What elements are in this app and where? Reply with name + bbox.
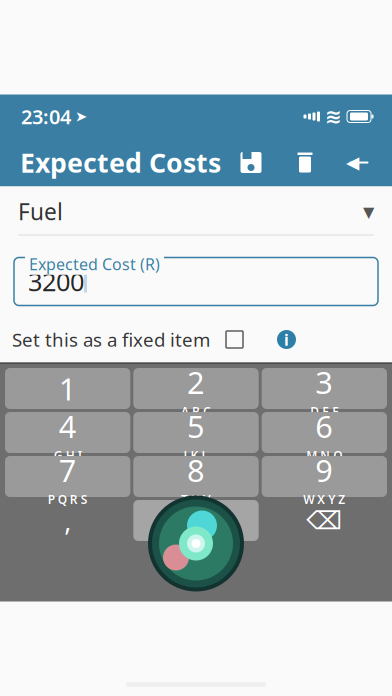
staticText: i [284, 329, 289, 350]
staticText: 1 [59, 368, 77, 409]
staticText: 5 [187, 406, 205, 446]
staticText: Expected Cost (R) [29, 253, 160, 275]
button[interactable]: 1 [5, 368, 130, 409]
staticText: T U V [181, 491, 211, 507]
staticText: ⌫ [306, 506, 342, 535]
button[interactable]: Comma [5, 500, 130, 541]
button[interactable]: Fuel [0, 196, 392, 235]
button[interactable]: Delete [292, 149, 318, 175]
staticText: 4 [59, 406, 77, 446]
staticText: 3200 [28, 265, 84, 298]
staticText: 9 [315, 450, 333, 490]
staticText: 3 [315, 362, 333, 402]
button[interactable]: Save [238, 149, 264, 175]
staticText: 23:04 [21, 103, 71, 130]
staticText: M N O [306, 447, 342, 463]
button[interactable]: 9 [262, 456, 387, 497]
staticText: , [64, 503, 71, 538]
button[interactable]: Zero [133, 500, 259, 541]
button[interactable]: 6 [262, 412, 387, 453]
button[interactable]: 4 [5, 412, 130, 453]
button[interactable]: Delete [262, 500, 387, 541]
button[interactable]: Information [277, 329, 296, 350]
button[interactable]: 7 [5, 456, 130, 497]
button[interactable]: Back [346, 149, 372, 175]
staticText: Fuel [18, 196, 63, 226]
staticText: 2 [187, 362, 205, 402]
staticText: ➤ [75, 108, 87, 125]
staticText: J K L [183, 447, 208, 463]
staticText: 7 [59, 450, 77, 490]
button[interactable]: 3 [262, 368, 387, 409]
button[interactable]: 2 [133, 368, 259, 409]
staticText: 8 [187, 450, 205, 490]
staticText: G H I [54, 447, 82, 463]
staticText: D E F [310, 403, 338, 419]
staticText: 6 [315, 406, 333, 446]
staticText: Expected Costs [20, 145, 221, 180]
staticText: W X Y Z [303, 491, 345, 507]
staticText: ◀ [346, 153, 359, 172]
staticText: ▾ [363, 199, 374, 224]
staticText: P Q R S [48, 491, 88, 507]
staticText: A B C [181, 403, 211, 419]
button[interactable]: 8 [133, 456, 259, 497]
button[interactable]: 5 [133, 412, 259, 453]
button[interactable]: Set this as a fixed item [226, 331, 243, 348]
staticText: ≋ [325, 105, 342, 128]
staticText: Set this as a fixed item [12, 327, 210, 352]
